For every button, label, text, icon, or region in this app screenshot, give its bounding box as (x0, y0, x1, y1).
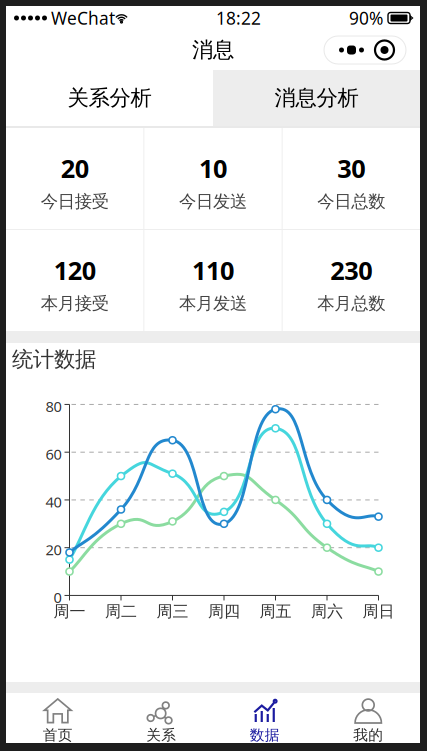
staticText: 20 (61, 151, 89, 185)
button[interactable]: 关系 (109, 693, 213, 743)
button[interactable]: 数据 (213, 693, 316, 743)
staticText: 首页 (43, 726, 73, 744)
button[interactable]: 更多 (324, 36, 406, 64)
staticText: 今日总数 (317, 190, 385, 212)
staticText: 周日 (362, 601, 394, 622)
staticText: 20 (45, 540, 61, 560)
staticText: 30 (337, 151, 365, 185)
staticText: 本月接受 (41, 292, 109, 314)
staticText: 消息分析 (274, 85, 358, 111)
staticText: 本月总数 (317, 292, 385, 314)
staticText: 今日发送 (179, 190, 247, 212)
staticText: 80 (45, 396, 61, 416)
staticText: 110 (192, 253, 234, 287)
staticText: 10 (199, 151, 227, 185)
staticText: 周一 (53, 601, 85, 622)
staticText: 关系 (146, 726, 176, 744)
staticText: 本月发送 (179, 292, 247, 314)
staticText: WeChat (51, 6, 115, 30)
staticText: 周六 (311, 601, 343, 622)
button[interactable]: 首页 (6, 693, 109, 743)
staticText: 周三 (156, 601, 188, 622)
staticText: 周五 (259, 601, 291, 622)
staticText: 我的 (353, 726, 383, 744)
staticText: 90% (349, 6, 383, 30)
button[interactable]: 我的 (316, 693, 420, 743)
staticText: 消息 (192, 37, 234, 63)
staticText: 周四 (208, 601, 240, 622)
staticText: 周二 (105, 601, 137, 622)
staticText: 230 (330, 253, 372, 287)
staticText: 18:22 (216, 6, 261, 30)
staticText: 关系分析 (67, 85, 151, 111)
staticText: 40 (45, 492, 61, 512)
staticText: 今日接受 (41, 190, 109, 212)
staticText: 数据 (250, 726, 280, 744)
button[interactable]: 关系分析 (6, 70, 213, 126)
staticText: 统计数据 (12, 346, 96, 373)
staticText: 120 (54, 253, 96, 287)
staticText: 0 (53, 587, 61, 607)
button[interactable]: 消息分析 (213, 70, 420, 126)
staticText: 60 (45, 444, 61, 464)
